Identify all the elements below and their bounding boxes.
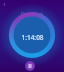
staticText: 1:14:08 [21,33,44,42]
staticText: Deep Focus [21,11,43,16]
button[interactable]: Pause [25,61,35,71]
button[interactable]: Back [2,2,7,7]
